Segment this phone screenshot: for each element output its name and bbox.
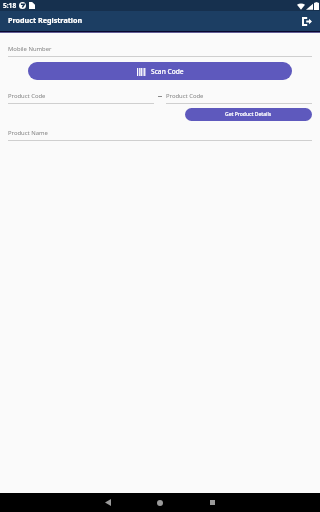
button[interactable]: Scan Code [28,62,292,80]
staticText: Scan Code [151,67,184,76]
button[interactable]: Product Code [8,92,154,104]
button[interactable]: Mobile Number [8,45,312,57]
staticText: Get Product Details [225,111,272,118]
staticText: Product Code [8,92,46,100]
button[interactable]: Home [145,493,175,512]
staticText: Product Registration [8,15,83,25]
button[interactable]: Product Name [8,129,312,141]
button[interactable]: Logout [299,13,315,29]
button[interactable]: Get Product Details [185,108,312,121]
staticText: Mobile Number [8,45,52,53]
button[interactable]: Recents [197,493,227,512]
staticText: Product Name [8,129,48,137]
staticText: Product Code [166,92,204,100]
staticText: 5:18 [3,1,17,10]
button[interactable]: Back [93,493,123,512]
button[interactable]: Product Code [166,92,312,104]
